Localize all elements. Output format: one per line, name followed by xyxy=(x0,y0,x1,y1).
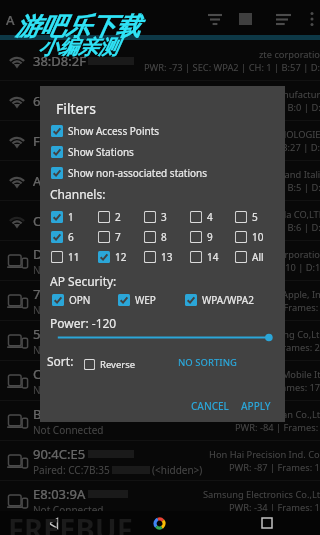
button[interactable]: 5 xyxy=(235,210,279,224)
staticText: 小编亲测 xyxy=(38,35,118,60)
staticText: TP-LINK TECHNOLOGIES xyxy=(219,128,320,141)
staticText: PWR: -88 | Frames: 7 xyxy=(235,301,320,314)
staticText: Shenzhen Manufacture xyxy=(224,88,320,101)
staticText: Paired: CC:7B:35 xyxy=(33,463,110,477)
staticText: Not Connected xyxy=(33,343,104,357)
staticText: Apple, Inc xyxy=(282,288,320,301)
button[interactable]: Recent apps xyxy=(213,511,320,535)
staticText: 38:D8:2F xyxy=(33,52,86,70)
staticText: 6 xyxy=(68,230,74,244)
staticText: Show Stations xyxy=(68,145,134,159)
button[interactable]: OPN xyxy=(52,293,91,307)
button[interactable]: Show Stations xyxy=(45,143,280,161)
staticText: NO SORTING xyxy=(178,356,237,369)
button[interactable]: 10 xyxy=(235,230,279,244)
staticText: WEP xyxy=(135,293,156,307)
button[interactable]: Home xyxy=(106,511,213,535)
button[interactable]: 1 xyxy=(51,210,95,224)
staticText: Show non-associated stations xyxy=(68,166,208,180)
button[interactable]: 9 xyxy=(190,230,234,244)
button[interactable]: AC:84:C6 xyxy=(0,161,320,201)
button[interactable]: 90:4C:E5 xyxy=(0,441,320,481)
button[interactable]: 54:A0:50 xyxy=(0,321,320,361)
button[interactable]: 7C:04:D0 xyxy=(0,281,320,321)
staticText: 2 xyxy=(115,210,121,224)
staticText: OnePlus Mobile Ite xyxy=(243,368,320,381)
button[interactable]: B4:0B:44 xyxy=(0,401,320,441)
button[interactable]: APPLY xyxy=(235,394,277,418)
staticText: PWR: -34 | Frames: 19 xyxy=(229,501,320,514)
button[interactable]: All xyxy=(235,250,279,264)
staticText: F8:1A:67 xyxy=(33,132,85,150)
button[interactable]: 6 xyxy=(51,230,95,244)
button[interactable]: 14 xyxy=(190,250,234,264)
button[interactable]: CANCEL xyxy=(185,394,235,418)
button[interactable]: 2 xyxy=(98,210,142,224)
staticText: OPN xyxy=(69,293,91,307)
staticText: 90:4C:E5 xyxy=(33,445,86,463)
button[interactable]: 4 xyxy=(190,210,234,224)
staticText: Not Connected xyxy=(33,423,104,437)
staticText: C0:EE:FB xyxy=(33,365,86,383)
staticText: zte corporation xyxy=(259,248,320,261)
staticText: Not Connected xyxy=(33,263,104,277)
button[interactable]: More options xyxy=(300,0,320,38)
button[interactable]: 12 xyxy=(98,250,142,264)
button[interactable]: 13 xyxy=(144,250,188,264)
staticText: PWR: -81 | SEC: WPA2 | CH: 6 | B:0 | D:3 xyxy=(150,101,320,114)
staticText: Liteon Technology xyxy=(246,528,320,535)
staticText: 3C:A0:67 xyxy=(33,525,87,535)
staticText: Tenda CO,LTD xyxy=(265,208,320,221)
button[interactable]: NO SORTING xyxy=(174,352,241,373)
staticText: AC:84:C6 xyxy=(33,172,87,190)
staticText: PWR: -73 | SEC: WPA2 | CH: 1 | B:57 | D:… xyxy=(144,61,320,74)
staticText: Not Connected xyxy=(33,383,104,397)
staticText: Not Connected xyxy=(33,303,104,317)
staticText: Zhejiang Co,Ltd xyxy=(257,328,320,341)
staticText: Show Access Points xyxy=(68,124,160,138)
staticText: Filters xyxy=(56,99,96,118)
button[interactable]: 7 xyxy=(98,230,142,244)
staticText: 8 xyxy=(161,230,167,244)
button[interactable]: 8 xyxy=(144,230,188,244)
button[interactable]: Back xyxy=(0,511,106,535)
button[interactable]: C8:3A:35 xyxy=(0,201,320,241)
button[interactable]: 11 xyxy=(51,250,95,264)
staticText: PWR: -85 | Frames: 27 xyxy=(229,341,320,354)
staticText: PWR: -79 | Frames: 172 xyxy=(224,381,320,394)
staticText: 9 xyxy=(207,230,213,244)
button[interactable]: F8:1A:67 xyxy=(0,121,320,161)
button[interactable]: D4:61:2E xyxy=(0,241,320,281)
button[interactable]: WPA/WPA2 xyxy=(185,293,254,307)
staticText: zte corporation xyxy=(259,48,320,61)
button[interactable]: E8:03:9A xyxy=(0,481,320,521)
button[interactable]: WEP xyxy=(118,293,156,307)
staticText: 14 xyxy=(207,250,219,264)
staticText: 1 xyxy=(68,210,74,224)
button[interactable]: 60:3A:7C xyxy=(0,81,320,121)
button[interactable]: Reverse xyxy=(84,356,136,372)
button[interactable]: 38:D8:2F xyxy=(0,41,320,81)
button[interactable]: Stop scan xyxy=(230,0,260,38)
staticText: 5 xyxy=(252,210,258,224)
staticText: 游吧乐下载 xyxy=(15,11,140,42)
button[interactable]: C0:EE:FB xyxy=(0,361,320,401)
button[interactable]: Show Access Points xyxy=(45,122,280,140)
staticText: AP Security: xyxy=(50,273,117,289)
staticText: PWR: -79 | SEC: WPA2 | CH: 1 | B:5 | D:0 xyxy=(150,181,320,194)
button[interactable]: Show non-associated stations xyxy=(45,164,280,182)
staticText: PWR: -77 | SEC: WPA | CH: 11 | B:27 | D:… xyxy=(144,141,320,154)
staticText: 3 xyxy=(161,210,167,224)
staticText: 7 xyxy=(115,230,121,244)
button[interactable]: Sort xyxy=(268,0,298,38)
staticText: Telecom and Italia xyxy=(246,168,320,181)
button[interactable]: 3 xyxy=(144,210,188,224)
staticText: (<hidden>) xyxy=(152,463,203,477)
staticText: Hon Hai Precision Ind. Co.,Ltd xyxy=(209,448,320,461)
button[interactable]: Power threshold xyxy=(50,330,280,345)
staticText: B4:0B:44 xyxy=(33,405,87,423)
button[interactable]: Filter xyxy=(200,0,230,38)
staticText: C8:3A:35 xyxy=(33,212,87,230)
button[interactable]: 3C:A0:67 xyxy=(0,521,320,535)
staticText: A xyxy=(6,11,15,29)
